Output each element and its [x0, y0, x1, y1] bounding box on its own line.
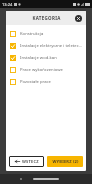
staticText: KATEGORIA: [32, 15, 61, 21]
button[interactable]: Prace wykończeniowe: [6, 64, 86, 76]
staticText: Konstrukcja: [20, 31, 44, 37]
button[interactable]: Konstrukcja: [6, 28, 86, 40]
staticText: WYBIERZ (2): [52, 159, 79, 164]
staticText: Prace wykończeniowe: [20, 67, 63, 73]
staticText: 13:24: [2, 2, 13, 7]
button[interactable]: Zamknij: [74, 14, 83, 23]
button[interactable]: Instalacje elektryczne i teletechniczne: [6, 40, 86, 52]
staticText: Pozostałe prace: [20, 79, 51, 85]
staticText: WSTECZ: [22, 159, 39, 164]
button[interactable]: Instalacje wod-kan: [6, 52, 86, 64]
staticText: Instalacje elektryczne i teletechniczne: [20, 43, 82, 49]
button[interactable]: Pozostałe prace: [6, 76, 86, 88]
button[interactable]: WYBIERZ (2): [47, 156, 83, 167]
staticText: Instalacje wod-kan: [20, 55, 57, 61]
button[interactable]: WSTECZ: [9, 156, 44, 167]
